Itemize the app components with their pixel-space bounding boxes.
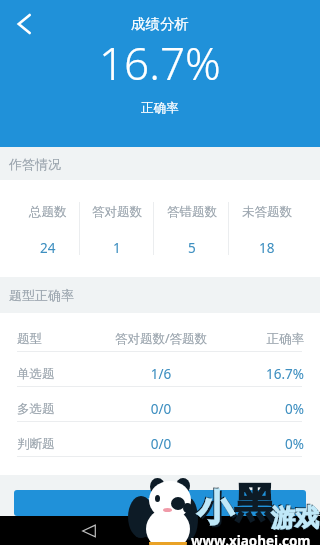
button[interactable]: Back bbox=[8, 8, 40, 40]
staticText: 游戏 bbox=[270, 502, 318, 532]
staticText: www.xiaohei.com bbox=[191, 532, 311, 545]
button[interactable]: 查看解析 bbox=[14, 490, 306, 516]
staticText: 16.7% bbox=[220, 365, 304, 383]
staticText: 成绩分析 bbox=[131, 15, 189, 33]
staticText: 作答情况 bbox=[9, 156, 61, 172]
staticText: 24 bbox=[40, 239, 56, 257]
staticText: 答对题数/答题数 bbox=[102, 330, 220, 347]
staticText: 0/0 bbox=[102, 435, 220, 453]
staticText: 题型 bbox=[17, 331, 102, 347]
staticText: 多选题 bbox=[17, 401, 102, 417]
staticText: 判断题 bbox=[17, 436, 102, 452]
staticText: 单选题 bbox=[17, 366, 102, 382]
staticText: 答对题数 bbox=[92, 204, 142, 220]
staticText: 游戏 bbox=[272, 504, 320, 534]
button[interactable]: 题型 bbox=[0, 317, 320, 352]
staticText: 正确率 bbox=[141, 100, 179, 116]
staticText: 总题数 bbox=[29, 204, 67, 220]
staticText: 查看解析 bbox=[134, 495, 186, 511]
staticText: 0% bbox=[220, 435, 304, 453]
staticText: 答错题数 bbox=[167, 204, 217, 220]
staticText: 正确率 bbox=[220, 331, 304, 347]
button[interactable]: 多选题 bbox=[0, 387, 320, 422]
staticText: 1/6 bbox=[102, 365, 220, 383]
staticText: 未答题数 bbox=[242, 204, 292, 220]
staticText: 5 bbox=[188, 239, 196, 257]
button[interactable]: 判断题 bbox=[0, 422, 320, 457]
staticText: 1 bbox=[113, 239, 121, 257]
staticText: 小 bbox=[199, 487, 235, 532]
staticText: 游戏 bbox=[271, 503, 319, 533]
staticText: 小 bbox=[196, 484, 232, 529]
button[interactable]: Back bbox=[82, 524, 96, 538]
staticText: 0/0 bbox=[102, 400, 220, 418]
staticText: 黑 bbox=[234, 478, 275, 530]
staticText: 18 bbox=[259, 239, 275, 257]
button[interactable]: 单选题 bbox=[0, 352, 320, 387]
staticText: 小 bbox=[197, 485, 233, 530]
staticText: 0% bbox=[220, 400, 304, 418]
staticText: 题型正确率 bbox=[9, 287, 74, 303]
staticText: 16.7% bbox=[99, 33, 221, 93]
